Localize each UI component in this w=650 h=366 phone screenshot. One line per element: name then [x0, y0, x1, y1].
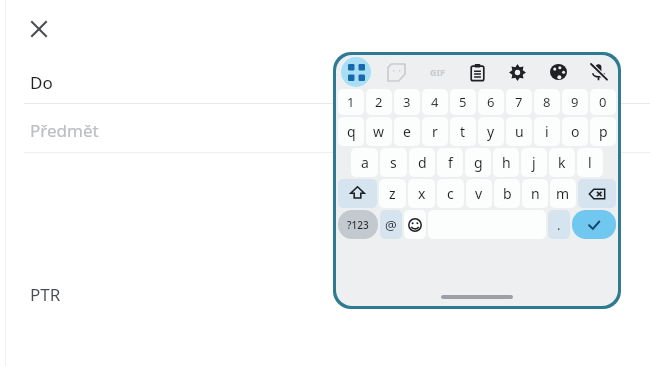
button[interactable]: Themes	[543, 57, 573, 87]
staticText: q	[347, 122, 356, 141]
staticText: x	[418, 184, 426, 203]
staticText: b	[503, 184, 512, 203]
button[interactable]: u	[506, 117, 532, 146]
staticText: w	[373, 122, 385, 141]
button[interactable]: q	[338, 117, 364, 146]
button[interactable]: i	[534, 117, 560, 146]
button[interactable]: f	[437, 148, 463, 177]
button[interactable]: z	[379, 179, 406, 208]
staticText: ?123	[347, 218, 369, 232]
button[interactable]: @	[380, 210, 402, 239]
button[interactable]: Voice input off	[583, 57, 613, 87]
button[interactable]: 4	[422, 89, 448, 115]
button[interactable]: 3	[394, 89, 420, 115]
button[interactable]: 6	[478, 89, 504, 115]
staticText: y	[487, 122, 495, 141]
button[interactable]: x	[408, 179, 435, 208]
staticText: o	[571, 122, 580, 141]
button[interactable]: 7	[506, 89, 532, 115]
button[interactable]: 0	[590, 89, 616, 115]
staticText: j	[532, 153, 536, 172]
button[interactable]: n	[522, 179, 548, 208]
button[interactable]: Clipboard	[462, 57, 492, 87]
staticText: Předmět	[30, 119, 99, 142]
button[interactable]: d	[409, 148, 435, 177]
button[interactable]: a	[351, 148, 378, 177]
staticText: l	[588, 153, 592, 172]
button[interactable]: Předmět	[0, 110, 650, 151]
button[interactable]: Emoji	[404, 210, 426, 239]
staticText: g	[474, 153, 483, 172]
staticText: f	[448, 153, 453, 172]
button[interactable]: j	[521, 148, 547, 177]
button[interactable]: GIF	[422, 57, 452, 87]
button[interactable]: Close	[21, 11, 57, 47]
button[interactable]: h	[493, 148, 519, 177]
button[interactable]: 8	[534, 89, 560, 115]
button[interactable]: 1	[338, 89, 364, 115]
staticText: 1	[347, 93, 355, 111]
staticText: a	[361, 153, 369, 172]
button[interactable]: l	[577, 148, 603, 177]
staticText: 3	[403, 93, 411, 111]
staticText: e	[403, 122, 411, 141]
button[interactable]: b	[494, 179, 520, 208]
staticText: t	[460, 122, 466, 141]
button[interactable]: e	[394, 117, 420, 146]
button[interactable]: Backspace	[578, 179, 616, 208]
staticText: 4	[431, 93, 439, 111]
staticText: 9	[571, 93, 579, 111]
staticText: u	[515, 122, 524, 141]
button[interactable]: c	[437, 179, 464, 208]
button[interactable]: t	[450, 117, 476, 146]
button[interactable]: ?123	[338, 210, 378, 239]
button[interactable]: v	[466, 179, 492, 208]
staticText: p	[599, 122, 608, 141]
button[interactable]: k	[549, 148, 575, 177]
button[interactable]: s	[380, 148, 407, 177]
staticText: v	[475, 184, 483, 203]
button[interactable]: Stickers	[381, 57, 411, 87]
button[interactable]: m	[550, 179, 576, 208]
staticText: n	[531, 184, 540, 203]
button[interactable]: Shift	[338, 179, 377, 208]
button[interactable]: o	[562, 117, 588, 146]
staticText: h	[502, 153, 511, 172]
staticText: 2	[375, 93, 383, 111]
staticText: k	[558, 153, 566, 172]
button[interactable]: r	[422, 117, 448, 146]
button[interactable]: Enter	[572, 210, 616, 239]
button[interactable]: w	[366, 117, 392, 146]
staticText: s	[390, 153, 397, 172]
staticText: 8	[543, 93, 551, 111]
button[interactable]: Do	[0, 62, 650, 103]
staticText: 6	[487, 93, 495, 111]
staticText: r	[432, 122, 438, 141]
staticText: m	[556, 184, 570, 203]
button[interactable]: g	[465, 148, 491, 177]
staticText: 0	[599, 93, 607, 111]
staticText: .	[557, 216, 561, 234]
button[interactable]: 5	[450, 89, 476, 115]
staticText: 5	[459, 93, 467, 111]
button[interactable]: .	[548, 210, 570, 239]
button[interactable]: y	[478, 117, 504, 146]
staticText: i	[545, 122, 549, 141]
staticText: z	[389, 184, 396, 203]
button[interactable]: 9	[562, 89, 588, 115]
staticText: 7	[515, 93, 523, 111]
button[interactable]: 2	[366, 89, 392, 115]
staticText: c	[447, 184, 454, 203]
staticText: @	[385, 216, 397, 234]
button[interactable]: p	[590, 117, 616, 146]
button[interactable]: Keyboard layouts	[341, 57, 371, 87]
staticText: d	[418, 153, 427, 172]
button[interactable]: Settings	[502, 57, 532, 87]
staticText: GIF	[430, 66, 445, 78]
staticText: PTR	[30, 283, 61, 306]
staticText: Do	[30, 71, 53, 94]
